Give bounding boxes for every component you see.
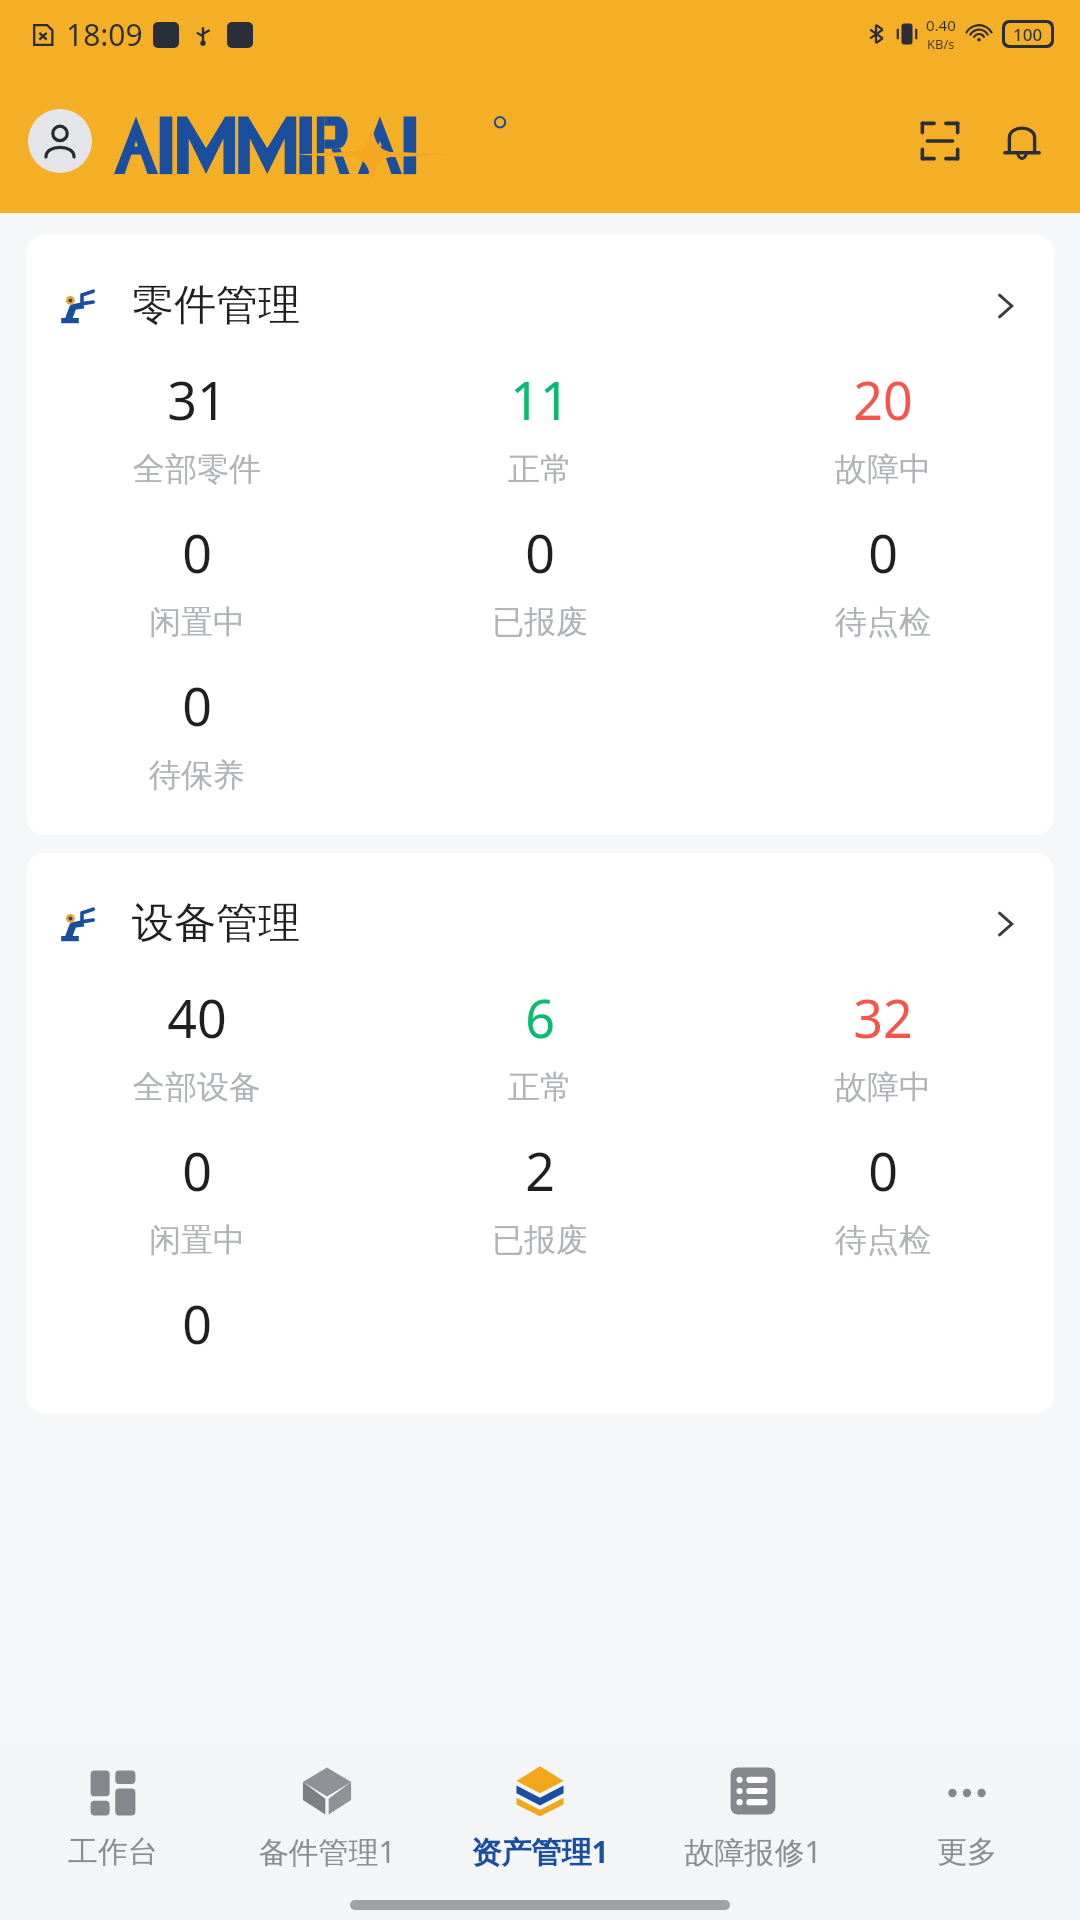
staticText: 待点检 <box>835 602 931 642</box>
button[interactable]: 备件管理1 <box>227 1763 427 1872</box>
staticText: 待保养 <box>149 755 245 795</box>
staticText: 正常 <box>508 1067 572 1107</box>
staticText: 0 <box>182 1288 212 1359</box>
staticText: 20 <box>853 364 913 435</box>
staticText: 0 <box>182 1135 212 1206</box>
staticText: 闲置中 <box>149 602 245 642</box>
button[interactable]: 故障报修1 <box>653 1763 853 1872</box>
staticText: 100 <box>1013 23 1043 45</box>
staticText: 6 <box>525 982 555 1053</box>
staticText: 闲置中 <box>149 1220 245 1260</box>
staticText: 全部零件 <box>133 449 261 489</box>
button[interactable]: 更多 <box>867 1765 1067 1871</box>
staticText: 全部设备 <box>133 1067 261 1107</box>
staticText: 0 <box>525 517 555 588</box>
staticText: 待点检 <box>835 1220 931 1260</box>
staticText: 已报废 <box>492 602 588 642</box>
staticText: 故障报修1 <box>684 1831 822 1872</box>
staticText: 正常 <box>508 449 572 489</box>
staticText: 0 <box>182 670 212 741</box>
button[interactable]: Notifications <box>992 111 1052 171</box>
staticText: KB/s <box>927 35 955 53</box>
button[interactable]: 工作台 <box>13 1765 213 1871</box>
staticText: 工作台 <box>68 1833 158 1871</box>
staticText: 零件管理 <box>132 279 300 332</box>
staticText: 40 <box>167 982 227 1053</box>
staticText: 更多 <box>937 1833 997 1871</box>
staticText: 资产管理1 <box>471 1831 609 1872</box>
staticText: 2 <box>525 1135 555 1206</box>
button[interactable]: 设备管理 <box>26 853 1054 1413</box>
staticText: 18:09 <box>66 14 143 55</box>
staticText: 故障中 <box>835 1067 931 1107</box>
staticText: 备件管理1 <box>258 1831 396 1872</box>
staticText: 故障中 <box>835 449 931 489</box>
button[interactable]: Profile <box>28 109 92 173</box>
staticText: 32 <box>853 982 913 1053</box>
staticText: 已报废 <box>492 1220 588 1260</box>
staticText: 0 <box>182 517 212 588</box>
staticText: 设备管理 <box>132 897 300 950</box>
button[interactable]: 零件管理 <box>26 235 1054 835</box>
staticText: 0.40 <box>926 15 956 35</box>
staticText: 11 <box>510 364 570 435</box>
button[interactable]: Scan <box>910 111 970 171</box>
staticText: 0 <box>868 517 898 588</box>
staticText: 31 <box>167 364 227 435</box>
staticText: 0 <box>868 1135 898 1206</box>
button[interactable]: 资产管理1 <box>440 1763 640 1872</box>
